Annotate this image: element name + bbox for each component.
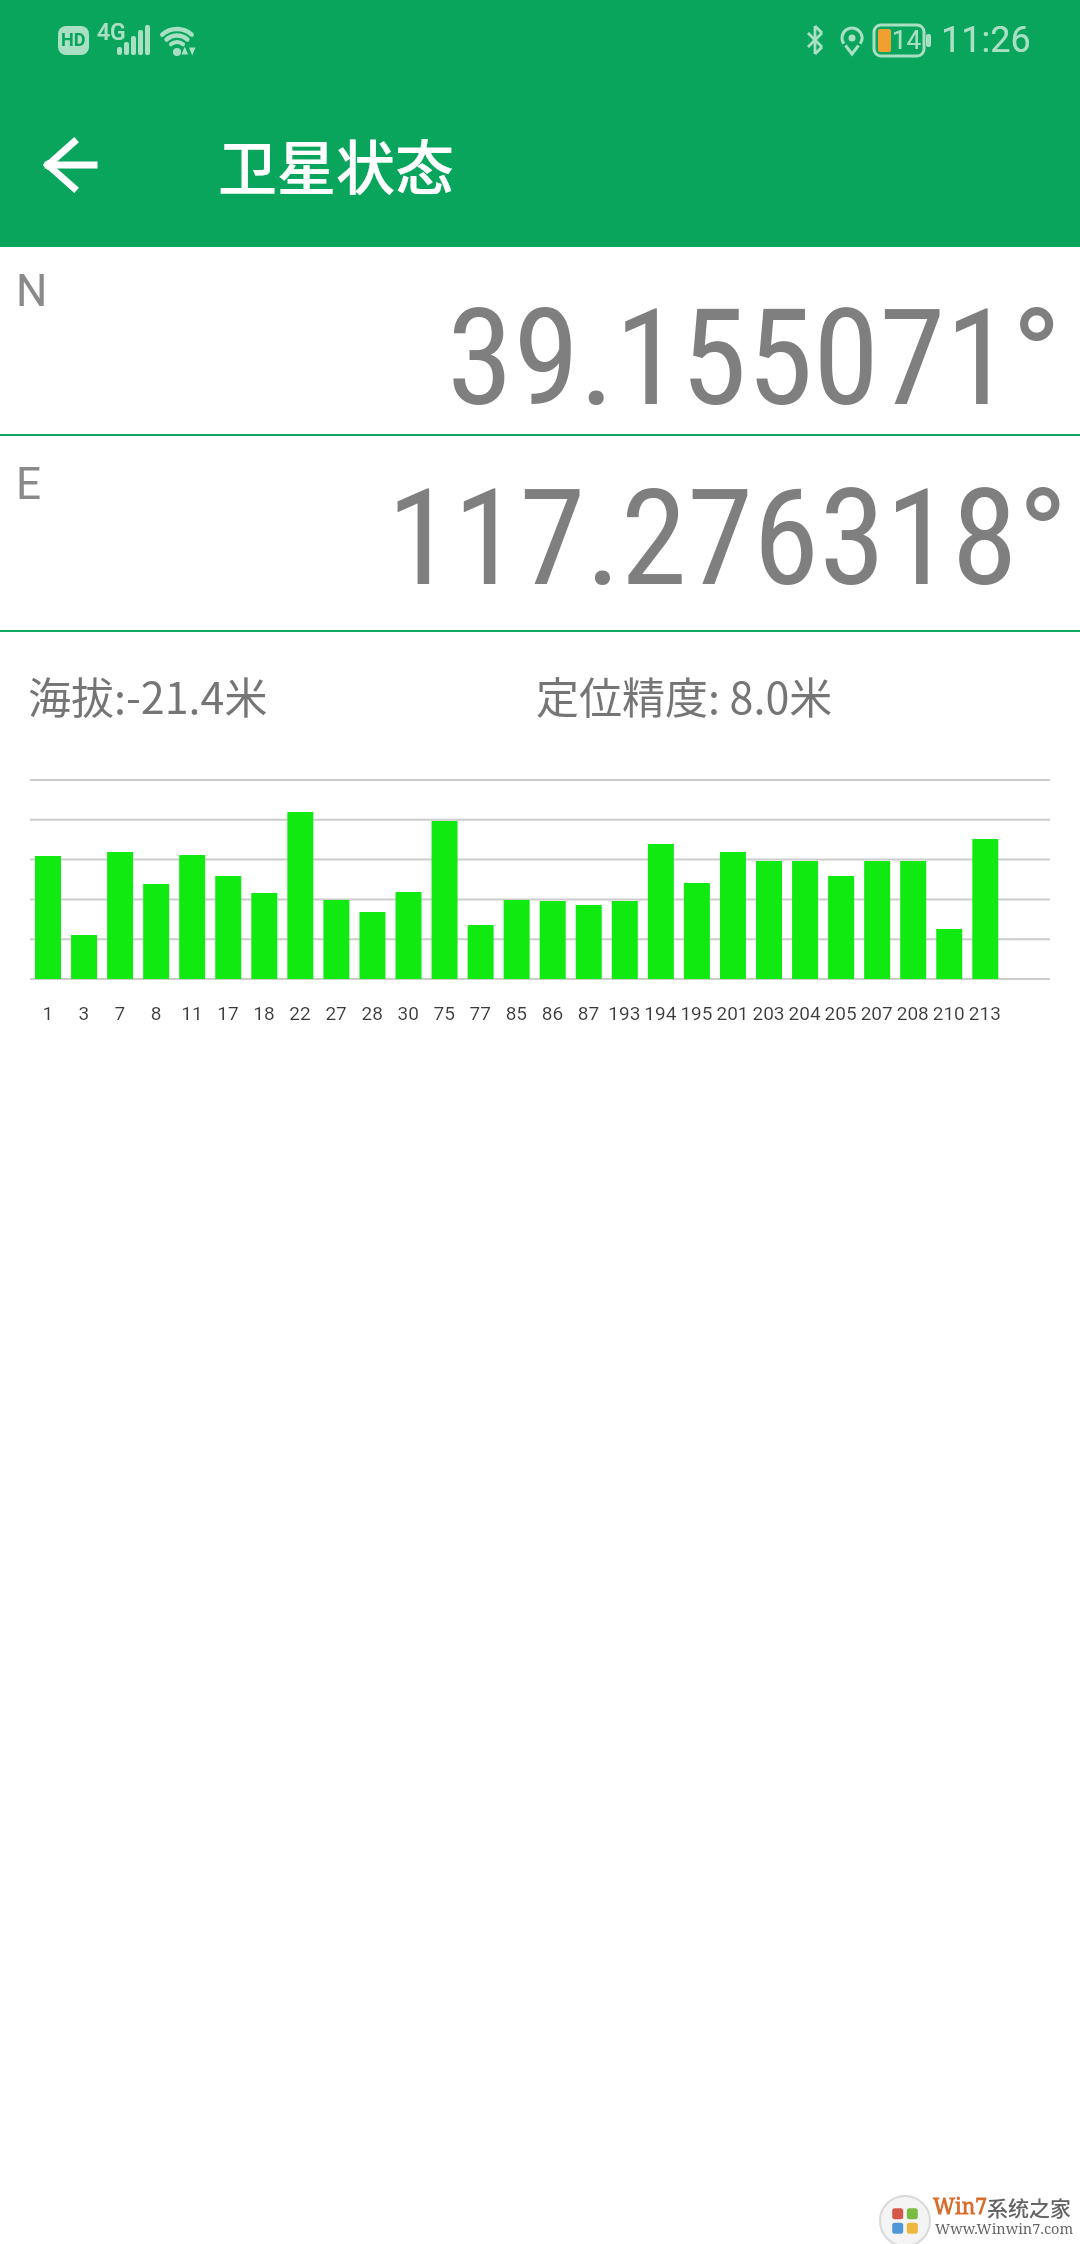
staticText: 117.276318° [387, 460, 1068, 617]
button[interactable] [35, 129, 107, 201]
staticText: 卫星状态 [218, 122, 455, 207]
staticText: N [16, 265, 48, 317]
staticText: 海拔:-21.4米 [28, 664, 268, 726]
staticText: 系统之家 [987, 2192, 1071, 2222]
staticText: 4G [97, 19, 126, 46]
staticText: 11:26 [941, 19, 1031, 61]
staticText: E [16, 458, 42, 510]
button[interactable]: E [0, 436, 1080, 630]
staticText: 39.155071° [447, 280, 1062, 434]
staticText: 14 [892, 25, 922, 55]
button[interactable]: N [0, 247, 1080, 434]
staticText: 定位精度: 8.0米 [536, 664, 833, 726]
staticText: HD [61, 29, 86, 50]
staticText: Www.Winwin7.com [935, 2218, 1074, 2238]
staticText: Win7 [933, 2192, 987, 2221]
